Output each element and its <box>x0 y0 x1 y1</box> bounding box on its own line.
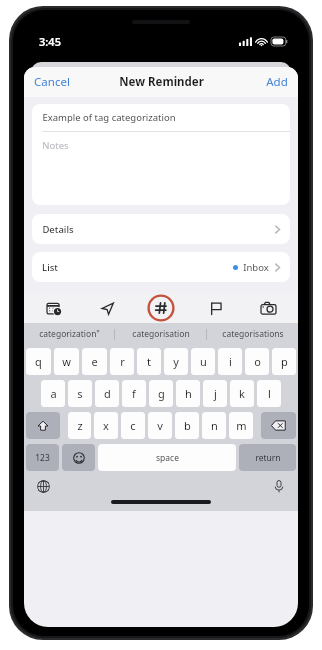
staticText: u <box>200 354 207 369</box>
button[interactable]: c <box>121 412 145 439</box>
button[interactable]: Add tag <box>147 294 175 322</box>
staticText: x <box>103 418 109 433</box>
staticText: return <box>255 452 281 464</box>
staticText: space <box>156 452 179 464</box>
button[interactable]: m <box>229 412 253 439</box>
staticText: b <box>184 418 191 433</box>
button[interactable]: s <box>68 380 92 407</box>
staticText: r <box>120 354 125 369</box>
button[interactable]: v <box>148 412 172 439</box>
button[interactable]: Example of tag categorization <box>32 104 290 131</box>
button[interactable]: Dictate <box>269 476 289 496</box>
button[interactable]: y <box>164 348 188 375</box>
staticText: Details <box>42 223 74 236</box>
button[interactable]: o <box>245 348 269 375</box>
button[interactable]: categorisation <box>115 323 206 345</box>
button[interactable]: g <box>149 380 173 407</box>
staticText: j <box>214 386 217 401</box>
button[interactable]: i <box>218 348 242 375</box>
staticText: c <box>130 418 136 433</box>
button[interactable]: t <box>137 348 161 375</box>
staticText: categorisations <box>222 328 284 340</box>
staticText: p <box>281 354 288 369</box>
button[interactable]: q <box>26 348 51 375</box>
staticText: h <box>185 386 192 401</box>
staticText: t <box>147 354 151 369</box>
button[interactable]: z <box>68 412 91 439</box>
staticText: z <box>77 418 83 433</box>
button[interactable]: f <box>122 380 146 407</box>
button[interactable]: List <box>32 252 290 282</box>
staticText: g <box>158 386 165 401</box>
staticText: v <box>157 418 163 433</box>
button[interactable]: l <box>257 380 281 407</box>
staticText: f <box>132 386 136 401</box>
staticText: categorisation <box>132 328 190 340</box>
staticText: o <box>254 354 261 369</box>
button[interactable]: b <box>175 412 199 439</box>
button[interactable]: Shift <box>26 412 60 439</box>
staticText: Notes <box>42 139 69 152</box>
button[interactable]: Add <box>256 69 298 95</box>
button[interactable]: e <box>82 348 107 375</box>
button[interactable]: Notes <box>32 132 290 205</box>
button[interactable]: Change keyboard <box>33 476 53 496</box>
button[interactable]: Backspace <box>261 412 296 439</box>
staticText: New Reminder <box>119 74 204 90</box>
button[interactable]: j <box>203 380 227 407</box>
button[interactable]: Add flag <box>204 296 228 320</box>
staticText: m <box>236 418 247 433</box>
button[interactable]: Add location <box>95 296 119 320</box>
button[interactable]: Cancel <box>24 69 80 95</box>
button[interactable]: a <box>41 380 65 407</box>
button[interactable]: n <box>202 412 226 439</box>
button[interactable]: h <box>176 380 200 407</box>
staticText: d <box>104 386 111 401</box>
button[interactable]: d <box>95 380 119 407</box>
button[interactable]: w <box>54 348 79 375</box>
button[interactable]: r <box>110 348 134 375</box>
button[interactable]: Add photo <box>256 296 280 320</box>
staticText: n <box>211 418 218 433</box>
staticText: Inbox <box>243 261 269 274</box>
staticText: Add <box>266 74 288 90</box>
staticText: categorization" <box>39 328 100 340</box>
staticText: s <box>77 386 83 401</box>
button[interactable]: 123 <box>26 444 59 471</box>
staticText: q <box>35 354 42 369</box>
staticText: y <box>173 354 179 369</box>
staticText: a <box>50 386 57 401</box>
staticText: i <box>229 354 232 369</box>
staticText: e <box>91 354 98 369</box>
staticText: 3:45 <box>39 34 61 49</box>
button[interactable]: categorization" <box>24 323 114 345</box>
button[interactable]: return <box>239 444 296 471</box>
staticText: w <box>62 354 71 369</box>
button[interactable]: u <box>191 348 215 375</box>
button[interactable]: Details <box>32 214 290 244</box>
button[interactable]: Emoji <box>62 444 95 471</box>
staticText: l <box>268 386 271 401</box>
button[interactable]: space <box>98 444 236 471</box>
button[interactable]: categorisations <box>207 323 298 345</box>
staticText: 123 <box>35 452 50 464</box>
button[interactable]: x <box>94 412 118 439</box>
button[interactable]: k <box>230 380 254 407</box>
button[interactable]: Add date <box>42 296 66 320</box>
staticText: List <box>42 261 58 274</box>
staticText: Cancel <box>34 74 70 90</box>
staticText: k <box>239 386 245 401</box>
button[interactable]: p <box>272 348 296 375</box>
staticText: Example of tag categorization <box>42 111 176 124</box>
